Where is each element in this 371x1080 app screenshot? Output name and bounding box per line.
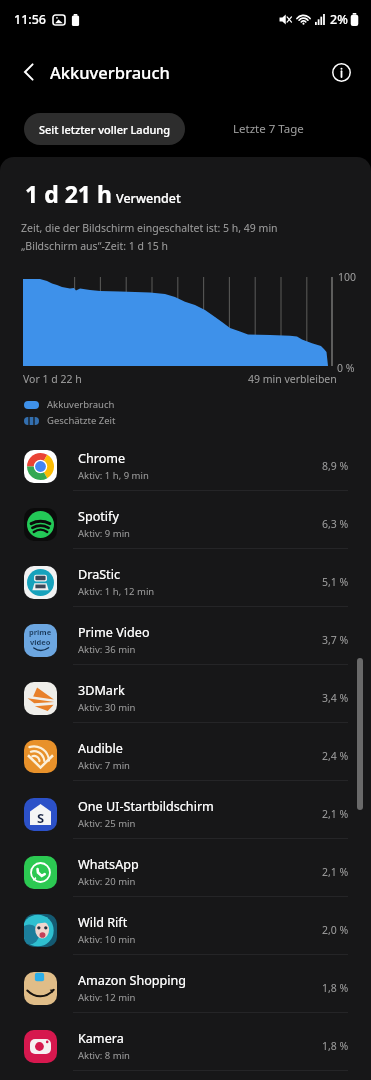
staticText: Aktiv: 8 min (78, 1049, 130, 1062)
staticText: WhatsApp (78, 856, 139, 873)
staticText: 2,1 % (322, 807, 349, 821)
staticText: Aktiv: 10 min (78, 933, 136, 946)
staticText: 2,4 % (322, 749, 349, 763)
staticText: 0 % (337, 361, 355, 375)
staticText: Aktiv: 1 h, 9 min (78, 469, 149, 482)
staticText: Amazon Shopping (78, 972, 187, 989)
staticText: video (30, 637, 51, 647)
staticText: 49 min verbleiben (248, 372, 337, 386)
button[interactable]: prime (0, 607, 371, 665)
staticText: Aktiv: 30 min (78, 701, 136, 714)
button[interactable]: Amazon Shopping (0, 955, 371, 1013)
staticText: Prime Video (78, 624, 150, 641)
staticText: S (37, 809, 45, 827)
button[interactable]: WhatsApp (0, 839, 371, 897)
button[interactable]: Information (325, 56, 357, 88)
staticText: 3DMark (78, 682, 125, 699)
staticText: Aktiv: 36 min (78, 643, 136, 656)
staticText: 2% (330, 11, 348, 28)
staticText: Kamera (78, 1030, 124, 1047)
staticText: DraStic (78, 566, 120, 583)
staticText: 6,3 % (322, 517, 349, 531)
staticText: 1,8 % (322, 981, 349, 995)
button[interactable]: Chrome (0, 433, 371, 491)
button[interactable]: Spotify (0, 491, 371, 549)
staticText: 8,9 % (322, 459, 349, 473)
staticText: Chrome (78, 450, 126, 467)
staticText: 2,0 % (322, 923, 349, 937)
staticText: Akkuverbrauch (47, 398, 115, 411)
staticText: Aktiv: 12 min (78, 991, 136, 1004)
staticText: 3,4 % (322, 691, 349, 705)
staticText: Letzte 7 Tage (233, 121, 304, 137)
staticText: 5,1 % (322, 575, 349, 589)
button[interactable]: 3DMark (0, 665, 371, 723)
staticText: Spotify (78, 508, 119, 525)
staticText: „Bildschirm aus“-Zeit: 1 d 15 h (21, 239, 168, 253)
staticText: Aktiv: 20 min (78, 875, 136, 888)
button[interactable]: Wild Rift (0, 897, 371, 955)
button[interactable]: Letzte 7 Tage (212, 113, 325, 145)
staticText: 11:56 (14, 11, 47, 28)
staticText: Aktiv: 1 h, 12 min (78, 585, 155, 598)
button[interactable]: Back (12, 55, 46, 89)
staticText: Seit letzter voller Ladung (39, 122, 171, 137)
button[interactable]: S (0, 781, 371, 839)
button[interactable]: Audible (0, 723, 371, 781)
staticText: Wild Rift (78, 914, 128, 931)
staticText: Zeit, die der Bildschirm eingeschaltet i… (21, 221, 278, 235)
staticText: 2,1 % (322, 865, 349, 879)
staticText: One UI-Startbildschirm (78, 798, 214, 815)
staticText: Akkuverbrauch (50, 61, 170, 83)
staticText: Geschätzte Zeit (47, 414, 116, 427)
staticText: prime (29, 627, 52, 637)
staticText: Vor 1 d 22 h (23, 372, 82, 386)
staticText: Verwendet (116, 190, 181, 207)
button[interactable]: DraStic (0, 549, 371, 607)
staticText: 100 (338, 270, 357, 284)
button[interactable]: Seit letzter voller Ladung (24, 113, 185, 145)
staticText: Aktiv: 7 min (78, 759, 130, 772)
staticText: 1 d 21 h (25, 178, 112, 209)
staticText: 3,7 % (322, 633, 349, 647)
staticText: Aktiv: 9 min (78, 527, 130, 540)
staticText: Audible (78, 740, 123, 757)
button[interactable]: Kamera (0, 1013, 371, 1071)
staticText: Aktiv: 25 min (78, 817, 136, 830)
staticText: 1,8 % (322, 1039, 349, 1053)
